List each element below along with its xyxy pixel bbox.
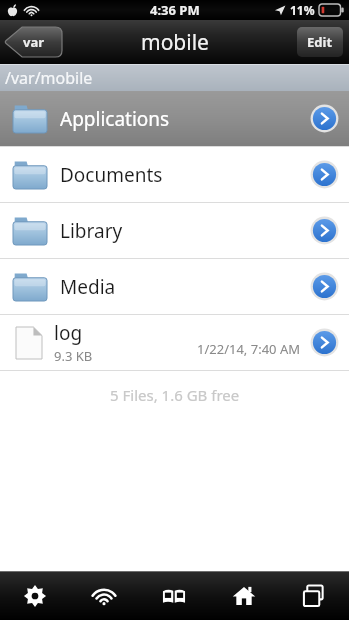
staticText: Library xyxy=(60,218,123,244)
button[interactable]: Open Library xyxy=(310,216,339,245)
staticText: Documents xyxy=(60,162,163,188)
button[interactable]: Library xyxy=(0,203,349,258)
staticText: var xyxy=(23,33,45,51)
staticText: Edit xyxy=(307,33,333,51)
button[interactable]: Media xyxy=(0,259,349,314)
button[interactable]: Applications xyxy=(0,91,349,146)
button[interactable]: var xyxy=(5,27,62,57)
button[interactable]: Open Media xyxy=(310,272,339,301)
button[interactable]: Open log xyxy=(310,328,339,357)
button[interactable]: Open Applications xyxy=(310,104,339,133)
staticText: Applications xyxy=(60,106,170,132)
button[interactable]: Windows xyxy=(279,572,349,620)
button[interactable]: Network xyxy=(69,572,139,620)
staticText: Media xyxy=(60,274,116,300)
button[interactable]: Documents xyxy=(0,147,349,202)
button[interactable]: Settings xyxy=(0,572,69,620)
button[interactable]: Edit xyxy=(297,27,343,57)
staticText: 11% xyxy=(290,2,315,18)
button[interactable]: log xyxy=(0,315,349,370)
staticText: mobile xyxy=(141,28,209,57)
staticText: 1/22/14, 7:40 AM xyxy=(197,340,300,358)
staticText: log xyxy=(54,320,83,346)
staticText: /var/mobile xyxy=(5,67,93,89)
staticText: 4:36 PM xyxy=(150,1,200,19)
staticText: 9.3 KB xyxy=(54,347,93,365)
button[interactable]: Open Documents xyxy=(310,160,339,189)
staticText: 5 Files, 1.6 GB free xyxy=(110,385,240,405)
button[interactable]: Bookmarks xyxy=(139,572,209,620)
button[interactable]: Home xyxy=(209,572,279,620)
